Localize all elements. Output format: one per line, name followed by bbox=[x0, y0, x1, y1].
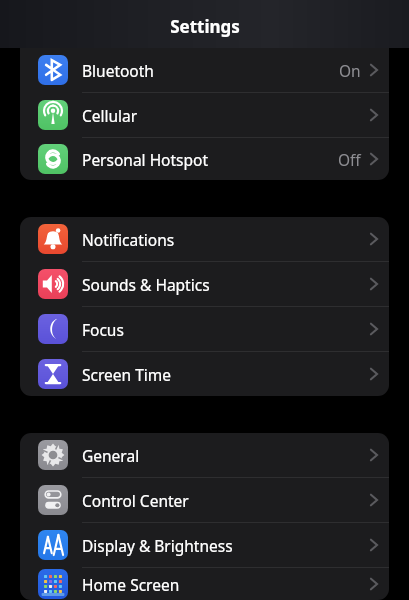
button[interactable]: Screen Time bbox=[20, 352, 389, 396]
button[interactable]: Display & Brightness bbox=[20, 523, 389, 567]
staticText: Off bbox=[338, 149, 361, 170]
staticText: Display & Brightness bbox=[82, 535, 370, 556]
staticText: Settings bbox=[170, 15, 240, 38]
button[interactable]: Sounds & Haptics bbox=[20, 262, 389, 306]
button[interactable]: Cellular bbox=[20, 93, 389, 137]
button[interactable]: Home Screen bbox=[20, 568, 389, 600]
staticText: Focus bbox=[82, 319, 370, 340]
staticText: Personal Hotspot bbox=[82, 149, 338, 170]
staticText: Sounds & Haptics bbox=[82, 274, 370, 295]
staticText: Screen Time bbox=[82, 364, 370, 385]
button[interactable]: Control Center bbox=[20, 478, 389, 522]
button[interactable]: General bbox=[20, 433, 389, 477]
button[interactable]: Notifications bbox=[20, 217, 389, 261]
staticText: Home Screen bbox=[82, 574, 370, 595]
staticText: General bbox=[82, 445, 370, 466]
button[interactable]: Personal Hotspot bbox=[20, 138, 389, 180]
button[interactable]: Bluetooth bbox=[20, 48, 389, 92]
staticText: Bluetooth bbox=[82, 60, 339, 81]
staticText: Control Center bbox=[82, 490, 370, 511]
staticText: Cellular bbox=[82, 105, 370, 126]
button[interactable]: Focus bbox=[20, 307, 389, 351]
staticText: On bbox=[339, 60, 361, 81]
staticText: Notifications bbox=[82, 229, 370, 250]
